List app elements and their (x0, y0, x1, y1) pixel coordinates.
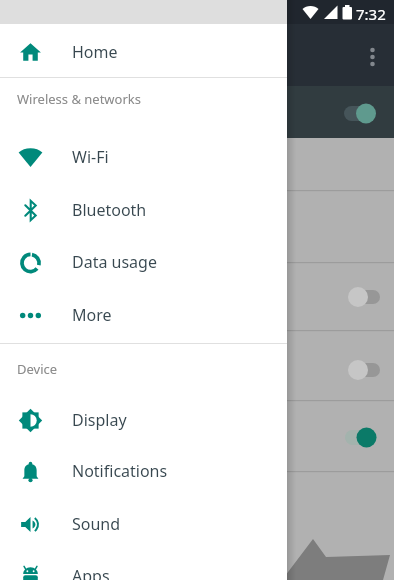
staticText: Notifications (72, 460, 168, 482)
button[interactable]: More (0, 289, 287, 341)
button[interactable]: Notifications (0, 445, 287, 497)
staticText: 7:32 (356, 4, 386, 24)
button[interactable]: Bluetooth (0, 184, 287, 236)
button[interactable]: Wi-Fi (0, 131, 287, 183)
button[interactable]: Home (0, 26, 287, 78)
staticText: Home (72, 41, 118, 63)
staticText: More (72, 304, 112, 326)
staticText: Display (72, 409, 127, 431)
staticText: Sound (72, 513, 121, 535)
staticText: Wi-Fi (72, 146, 109, 168)
staticText: Bluetooth (72, 199, 147, 221)
button[interactable]: Apps (0, 550, 287, 580)
staticText: Wireless & networks (17, 90, 141, 108)
staticText: Device (17, 360, 58, 378)
button[interactable] (287, 24, 394, 86)
button[interactable]: Sound (0, 498, 287, 550)
staticText: Data usage (72, 251, 157, 273)
button[interactable]: Data usage (0, 236, 287, 288)
staticText: Apps (72, 565, 110, 580)
button[interactable]: Display (0, 394, 287, 446)
button[interactable] (287, 86, 394, 138)
